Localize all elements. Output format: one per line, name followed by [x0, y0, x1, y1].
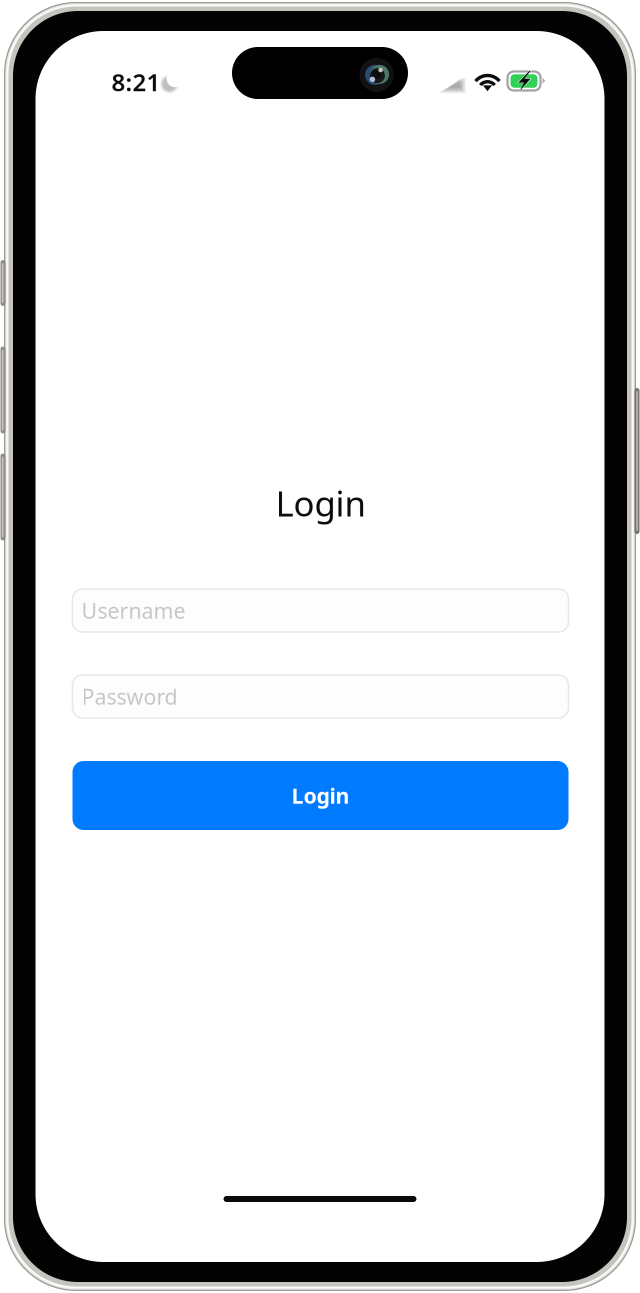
staticText: Username — [81, 596, 185, 625]
staticText: Login — [275, 480, 365, 526]
staticText: Login — [291, 781, 349, 810]
button[interactable]: Login — [72, 761, 568, 830]
staticText: 8:21 — [111, 66, 160, 98]
button[interactable]: Username — [72, 589, 568, 632]
staticText: Password — [81, 682, 177, 711]
button[interactable]: Password — [72, 675, 568, 718]
